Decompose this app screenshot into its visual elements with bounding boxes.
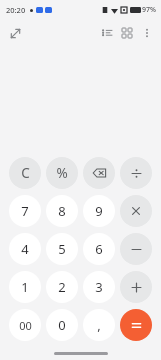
button[interactable]: More options	[137, 23, 157, 43]
staticText: C	[21, 164, 30, 182]
button[interactable]: Equals	[120, 309, 152, 341]
button[interactable]: Plus	[120, 271, 152, 303]
button[interactable]: 4	[9, 233, 41, 265]
button[interactable]: 3	[83, 271, 115, 303]
button[interactable]: 00	[9, 309, 41, 341]
button[interactable]: ,	[83, 309, 115, 341]
staticText: 00	[19, 318, 32, 333]
button[interactable]: History	[97, 23, 117, 43]
button[interactable]: Multiply	[120, 195, 152, 227]
staticText: 7	[21, 202, 29, 220]
button[interactable]: %	[46, 157, 78, 189]
staticText: 3	[95, 278, 103, 296]
button[interactable]: 1	[9, 271, 41, 303]
button[interactable]: 2	[46, 271, 78, 303]
staticText: 2	[58, 278, 66, 296]
button[interactable]: 7	[9, 195, 41, 227]
staticText: 1	[21, 278, 29, 296]
button[interactable]: Expand	[5, 23, 25, 43]
button[interactable]: Converter	[117, 23, 137, 43]
staticText: 97%	[142, 5, 156, 15]
staticText: %	[56, 164, 68, 182]
button[interactable]: 8	[46, 195, 78, 227]
button[interactable]: 6	[83, 233, 115, 265]
button[interactable]: 9	[83, 195, 115, 227]
staticText: 8	[58, 202, 66, 220]
button[interactable]: Backspace	[83, 157, 115, 189]
staticText: 4	[21, 240, 29, 258]
button[interactable]: Divide	[120, 157, 152, 189]
button[interactable]: Minus	[120, 233, 152, 265]
button[interactable]: 0	[46, 309, 78, 341]
button[interactable]: 5	[46, 233, 78, 265]
button[interactable]: C	[9, 157, 41, 189]
staticText: 0	[58, 316, 66, 334]
staticText: 6	[95, 240, 103, 258]
staticText: 5	[58, 240, 66, 258]
staticText: 9	[95, 202, 103, 220]
staticText: ,	[97, 316, 101, 334]
staticText: 20:20	[6, 5, 26, 15]
